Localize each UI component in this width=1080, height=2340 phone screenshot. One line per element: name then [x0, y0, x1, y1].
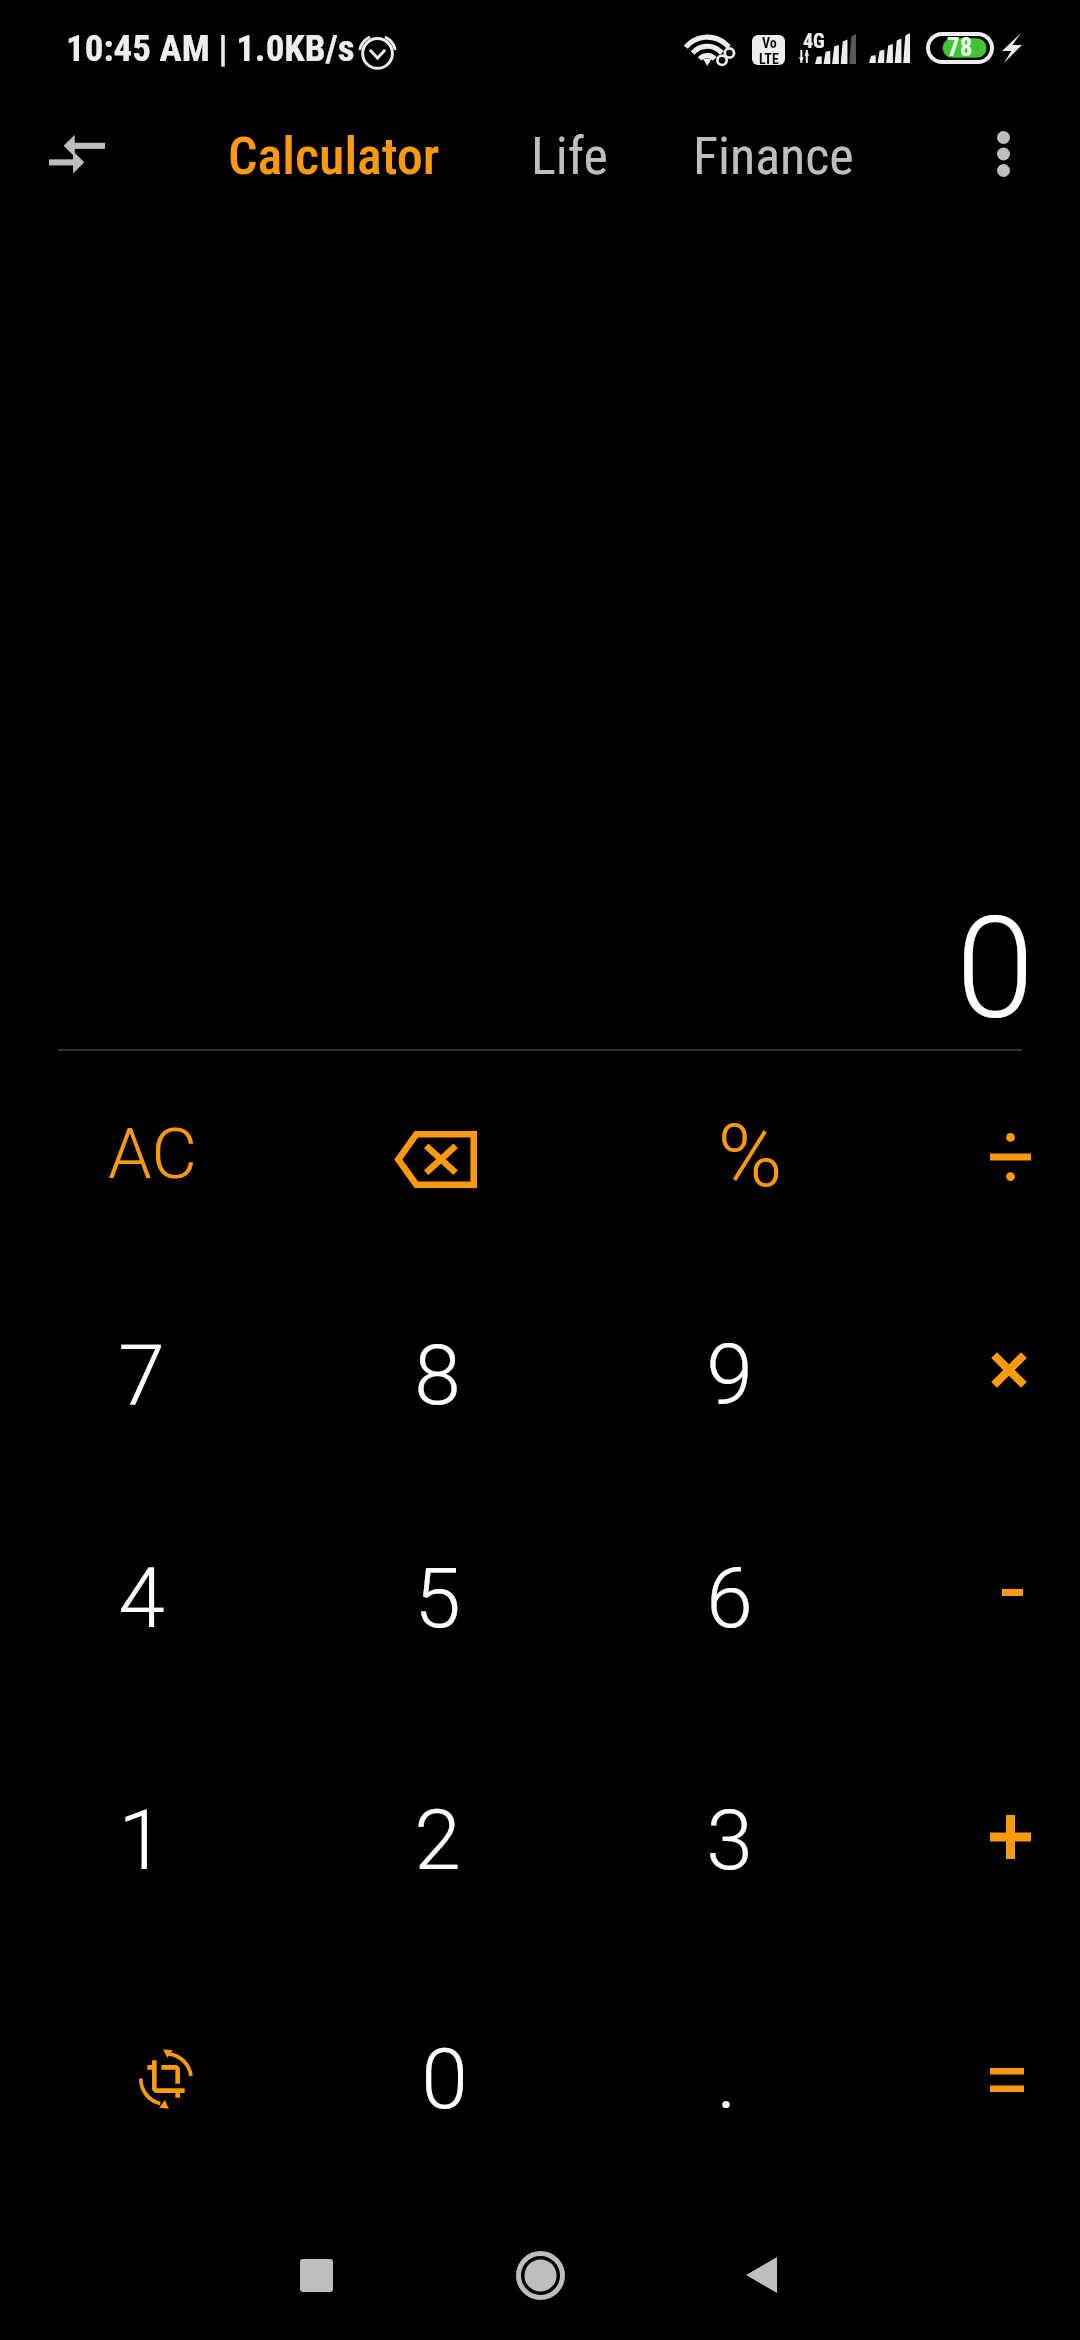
staticText: Calculator [228, 126, 440, 187]
staticText: AC [108, 1113, 197, 1195]
button[interactable]: 2 [303, 1731, 571, 1949]
button[interactable]: 0 [310, 1970, 578, 2188]
staticText: 8 [414, 1326, 461, 1424]
staticText: 0 [421, 2030, 468, 2128]
button[interactable]: 5 [303, 1489, 571, 1707]
staticText: Vo [762, 35, 777, 51]
button[interactable]: Multiply [875, 1261, 1080, 1479]
staticText: 10:45 AM | 1.0KB/s [66, 27, 355, 70]
button[interactable]: Minus [878, 1483, 1080, 1701]
button[interactable]: More options [951, 99, 1055, 209]
staticText: % [717, 1104, 783, 1207]
staticText: 5 [414, 1549, 461, 1647]
staticText: Finance [693, 126, 854, 187]
button[interactable]: Finance [667, 103, 882, 209]
button[interactable]: 9 [595, 1266, 863, 1484]
other: Backspace [395, 1131, 477, 1188]
button[interactable]: 8 [303, 1266, 571, 1484]
staticText: 4 [118, 1549, 165, 1647]
button[interactable]: AC [18, 1045, 286, 1263]
staticText: 3 [706, 1791, 753, 1889]
button[interactable]: Equals [873, 1971, 1080, 2189]
button[interactable]: Convert [32, 1970, 300, 2188]
staticText: LTE [759, 51, 779, 65]
staticText: 1 [118, 1791, 165, 1889]
staticText: . [716, 2030, 737, 2128]
button[interactable]: 1 [7, 1731, 275, 1949]
staticText: 7 [118, 1326, 165, 1424]
button[interactable]: % [616, 1046, 884, 1264]
button[interactable]: 4 [7, 1489, 275, 1707]
button[interactable]: 3 [595, 1731, 863, 1949]
button[interactable]: Back [691, 2210, 831, 2340]
staticText: 9 [706, 1326, 753, 1424]
button[interactable]: Recents [246, 2210, 386, 2340]
button[interactable]: Calculator [202, 103, 359, 209]
staticText: 6 [706, 1549, 753, 1647]
staticText: 2 [414, 1791, 461, 1889]
button[interactable]: . [592, 1970, 860, 2188]
button[interactable]: Backspace [302, 1050, 570, 1268]
staticText: 0 [956, 886, 1035, 1051]
button[interactable]: Home [470, 2210, 610, 2340]
button[interactable]: Collapse [15, 99, 139, 209]
staticText: Life [531, 126, 608, 187]
staticText: 78 [947, 33, 973, 62]
staticText: 4G [803, 29, 825, 52]
button[interactable]: Plus [876, 1728, 1080, 1946]
button[interactable]: 7 [7, 1266, 275, 1484]
button[interactable]: Divide [876, 1048, 1080, 1266]
button[interactable]: Life [505, 103, 633, 209]
button[interactable]: 6 [595, 1489, 863, 1707]
